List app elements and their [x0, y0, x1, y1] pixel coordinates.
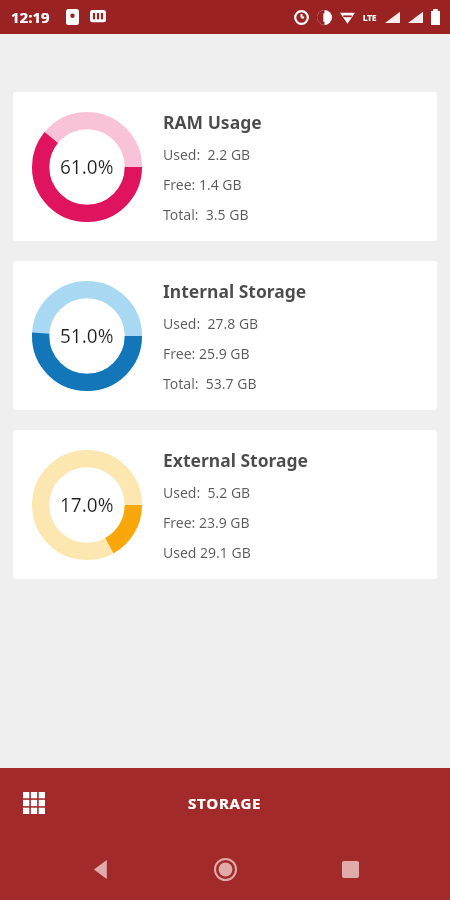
staticText: Used: 5.2 GB	[163, 483, 251, 502]
staticText: External Storage	[163, 448, 309, 472]
staticText: LTE	[363, 12, 377, 23]
staticText: Used 29.1 GB	[163, 543, 251, 562]
button[interactable]: 61.0%	[13, 92, 437, 241]
staticText: Free: 1.4 GB	[163, 175, 242, 194]
staticText: STORAGE	[188, 793, 262, 813]
button[interactable]: Apps	[10, 779, 58, 827]
button[interactable]: Home	[201, 845, 249, 893]
staticText: Total: 53.7 GB	[163, 374, 257, 393]
button[interactable]: 51.0%	[13, 261, 437, 410]
staticText: 17.0%	[60, 492, 114, 518]
staticText: Total: 3.5 GB	[163, 205, 249, 224]
staticText: RAM Usage	[163, 110, 262, 134]
staticText: Free: 25.9 GB	[163, 344, 250, 363]
staticText: Used: 27.8 GB	[163, 314, 259, 333]
button[interactable]: Recents	[326, 845, 374, 893]
staticText: 51.0%	[60, 323, 114, 349]
button[interactable]: 17.0%	[13, 430, 437, 579]
staticText: 12:19	[11, 7, 50, 27]
staticText: Internal Storage	[163, 279, 307, 303]
staticText: 61.0%	[60, 154, 114, 180]
staticText: Used: 2.2 GB	[163, 145, 251, 164]
button[interactable]: Back	[77, 845, 125, 893]
staticText: Free: 23.9 GB	[163, 513, 250, 532]
